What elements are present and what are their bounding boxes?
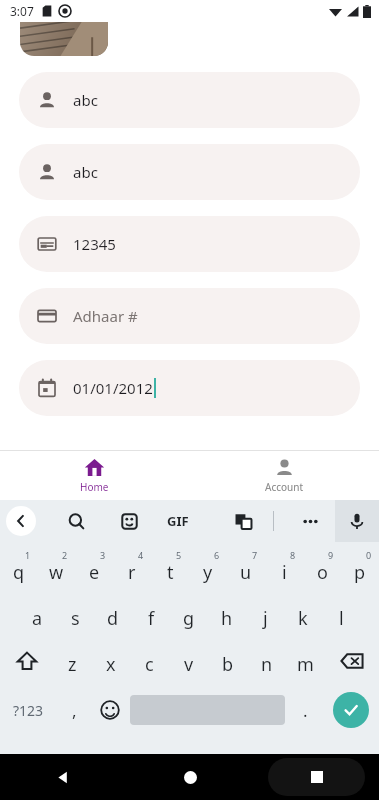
- staticText: p: [354, 560, 366, 585]
- staticText: m: [297, 652, 314, 677]
- button[interactable]: 9: [303, 546, 341, 592]
- button[interactable]: 1: [0, 546, 37, 592]
- staticText: h: [221, 606, 233, 631]
- button[interactable]: 0: [341, 546, 379, 592]
- staticText: k: [298, 606, 308, 631]
- button[interactable]: f: [132, 592, 170, 638]
- staticText: i: [282, 560, 287, 585]
- staticText: abc: [73, 90, 98, 110]
- staticText: t: [167, 560, 174, 585]
- staticText: q: [13, 560, 25, 585]
- staticText: 2: [62, 549, 68, 561]
- button[interactable]: 12345: [19, 216, 360, 272]
- staticText: 5: [176, 549, 182, 561]
- button[interactable]: Translate: [227, 505, 259, 537]
- staticText: Account: [265, 480, 304, 494]
- button[interactable]: Search: [60, 505, 92, 537]
- staticText: 6: [214, 549, 220, 561]
- button[interactable]: Emoji: [92, 684, 127, 736]
- button[interactable]: j: [246, 592, 284, 638]
- button[interactable]: Back: [6, 506, 36, 536]
- button[interactable]: Enter: [333, 692, 369, 728]
- button[interactable]: l: [322, 592, 360, 638]
- staticText: ,: [72, 699, 77, 722]
- button[interactable]: abc: [19, 72, 360, 128]
- button[interactable]: [20, 22, 108, 56]
- button[interactable]: 6: [189, 546, 227, 592]
- staticText: 9: [328, 549, 334, 561]
- staticText: l: [339, 606, 344, 631]
- staticText: abc: [73, 162, 98, 182]
- staticText: s: [71, 606, 80, 631]
- button[interactable]: v: [169, 638, 208, 684]
- button[interactable]: Recent apps: [268, 758, 365, 796]
- button[interactable]: b: [208, 638, 247, 684]
- staticText: b: [222, 652, 234, 677]
- staticText: e: [89, 560, 100, 585]
- staticText: g: [183, 606, 195, 631]
- button[interactable]: Back: [0, 754, 127, 800]
- button[interactable]: m: [286, 638, 325, 684]
- button[interactable]: .: [288, 684, 323, 736]
- staticText: 0: [366, 549, 372, 561]
- staticText: f: [148, 606, 155, 631]
- staticText: a: [32, 606, 43, 631]
- button[interactable]: g: [170, 592, 208, 638]
- button[interactable]: z: [53, 638, 91, 684]
- staticText: 8: [290, 549, 296, 561]
- button[interactable]: s: [56, 592, 94, 638]
- button[interactable]: n: [247, 638, 286, 684]
- staticText: c: [145, 652, 154, 677]
- staticText: u: [240, 560, 252, 585]
- button[interactable]: k: [284, 592, 322, 638]
- staticText: j: [263, 606, 268, 631]
- button[interactable]: d: [94, 592, 132, 638]
- button[interactable]: x: [91, 638, 130, 684]
- button[interactable]: 5: [151, 546, 189, 592]
- staticText: 7: [252, 549, 258, 561]
- button[interactable]: Backspace: [325, 638, 379, 684]
- staticText: 01/01/2012: [73, 378, 153, 398]
- button[interactable]: Account: [189, 457, 379, 494]
- button[interactable]: ,: [57, 684, 92, 736]
- staticText: 1: [25, 549, 31, 561]
- staticText: 3:07: [10, 3, 34, 19]
- button[interactable]: 3: [75, 546, 113, 592]
- button[interactable]: ?123: [0, 684, 57, 736]
- staticText: Adhaar #: [73, 306, 138, 326]
- button[interactable]: Stickers: [113, 505, 145, 537]
- button[interactable]: Home: [127, 754, 253, 800]
- staticText: ?123: [13, 701, 44, 720]
- button[interactable]: abc: [19, 144, 360, 200]
- staticText: w: [49, 560, 64, 585]
- button[interactable]: Adhaar #: [19, 288, 360, 344]
- staticText: 12345: [73, 234, 116, 254]
- button[interactable]: 2: [37, 546, 75, 592]
- button[interactable]: 4: [113, 546, 151, 592]
- staticText: 3: [100, 549, 106, 561]
- staticText: 4: [138, 549, 144, 561]
- staticText: .: [303, 699, 308, 722]
- staticText: v: [184, 652, 194, 677]
- staticText: o: [317, 560, 328, 585]
- button[interactable]: 7: [227, 546, 265, 592]
- button[interactable]: 8: [265, 546, 303, 592]
- button[interactable]: h: [208, 592, 246, 638]
- staticText: r: [128, 560, 136, 585]
- button[interactable]: Home: [0, 457, 189, 494]
- button[interactable]: 01/01/2012: [19, 360, 360, 416]
- button[interactable]: a: [18, 592, 56, 638]
- button[interactable]: c: [130, 638, 169, 684]
- staticText: z: [68, 652, 77, 677]
- staticText: d: [107, 606, 119, 631]
- button[interactable]: GIF: [167, 512, 189, 530]
- staticText: y: [203, 560, 213, 585]
- staticText: n: [261, 652, 273, 677]
- staticText: x: [106, 652, 116, 677]
- button[interactable]: More options: [294, 505, 326, 537]
- staticText: Home: [80, 480, 109, 494]
- button[interactable]: Voice input: [335, 500, 379, 542]
- button[interactable]: Shift: [0, 638, 53, 684]
